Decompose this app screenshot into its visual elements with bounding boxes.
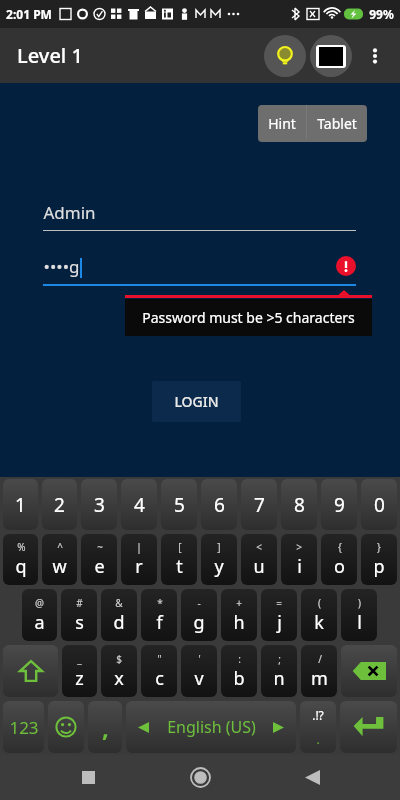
button[interactable]: & xyxy=(101,589,137,641)
staticText: u xyxy=(253,554,265,579)
button[interactable]: * xyxy=(141,589,177,641)
staticText: } xyxy=(377,540,381,554)
staticText: 1 xyxy=(15,492,26,518)
button[interactable]: 4 xyxy=(121,479,157,530)
button[interactable]: Back xyxy=(288,755,336,800)
button[interactable]: # xyxy=(61,589,97,641)
staticText: % xyxy=(17,540,26,554)
button[interactable]: 8 xyxy=(281,479,317,530)
button[interactable]: .!? xyxy=(300,701,336,753)
button[interactable]: _ xyxy=(62,645,97,697)
staticText: ~ xyxy=(97,540,103,554)
button[interactable]: Hint xyxy=(264,35,306,77)
staticText: Level 1 xyxy=(17,42,83,69)
staticText: 2:01 PM xyxy=(6,6,52,22)
staticText: m xyxy=(311,666,328,691)
staticText: e xyxy=(94,554,105,579)
button[interactable]: ; xyxy=(261,645,297,697)
staticText: ) xyxy=(358,596,361,610)
staticText: j xyxy=(277,610,282,635)
button[interactable]: Space xyxy=(126,701,296,753)
button[interactable]: 3 xyxy=(81,479,117,530)
button[interactable]: ' xyxy=(181,645,217,697)
button[interactable]: Backspace xyxy=(341,645,397,697)
staticText: a xyxy=(34,610,45,635)
button[interactable]: ( xyxy=(301,589,337,641)
staticText: 6 xyxy=(214,492,225,518)
staticText: # xyxy=(76,596,83,610)
button[interactable]: 123 xyxy=(3,701,44,753)
button[interactable]: [ xyxy=(161,534,197,585)
staticText: t xyxy=(176,554,183,579)
button[interactable]: " xyxy=(141,645,177,697)
staticText: ••••g xyxy=(43,255,80,278)
staticText: z xyxy=(75,666,84,691)
staticText: ^ xyxy=(57,540,63,554)
button[interactable]: ^ xyxy=(42,534,77,585)
button[interactable]: 6 xyxy=(201,479,237,530)
button[interactable]: ] xyxy=(201,534,237,585)
staticText: 2 xyxy=(54,492,65,518)
staticText: $ xyxy=(116,652,122,666)
staticText: 123 xyxy=(9,716,39,739)
staticText: 7 xyxy=(254,492,265,518)
staticText: w xyxy=(52,554,67,579)
button[interactable]: ••••g xyxy=(43,255,356,286)
staticText: x xyxy=(114,666,124,691)
button[interactable]: Recents xyxy=(64,755,112,800)
staticText: 4 xyxy=(134,492,145,518)
button[interactable]: Home xyxy=(176,755,224,800)
staticText: h xyxy=(233,610,245,635)
button[interactable]: } xyxy=(361,534,397,585)
button[interactable]: 5 xyxy=(161,479,197,530)
staticText: n xyxy=(273,666,285,691)
staticText: l xyxy=(357,610,362,635)
button[interactable]: Tablet xyxy=(307,105,367,142)
staticText: .!? xyxy=(312,707,324,723)
staticText: s xyxy=(75,610,84,635)
button[interactable]: 1 xyxy=(3,479,38,530)
button[interactable]: % xyxy=(3,534,38,585)
staticText: b xyxy=(233,666,245,691)
button[interactable]: { xyxy=(321,534,357,585)
button[interactable]: Shift xyxy=(3,645,58,697)
button[interactable]: $ xyxy=(101,645,137,697)
button[interactable]: Hint xyxy=(258,105,306,142)
staticText: - xyxy=(197,596,201,610)
staticText: ; xyxy=(278,652,281,666)
staticText: . xyxy=(316,731,320,747)
button[interactable]: Admin xyxy=(43,201,356,231)
button[interactable]: ) xyxy=(341,589,377,641)
button[interactable]: More options xyxy=(356,37,394,75)
staticText: g xyxy=(193,610,205,635)
button[interactable]: Emoji xyxy=(48,701,84,753)
staticText: i xyxy=(297,554,302,579)
staticText: : xyxy=(238,652,241,666)
button[interactable]: 7 xyxy=(241,479,277,530)
staticText: p xyxy=(373,554,385,579)
button[interactable]: 2 xyxy=(42,479,77,530)
staticText: f xyxy=(156,610,163,635)
button[interactable]: Enter xyxy=(340,701,397,753)
button[interactable]: @ xyxy=(22,589,57,641)
staticText: Tablet xyxy=(317,114,357,133)
button[interactable]: > xyxy=(281,534,317,585)
button[interactable]: + xyxy=(221,589,257,641)
button[interactable]: 9 xyxy=(321,479,357,530)
button[interactable]: | xyxy=(121,534,157,585)
button[interactable]: : xyxy=(221,645,257,697)
button[interactable]: / xyxy=(301,645,337,697)
staticText: 5 xyxy=(174,492,185,518)
button[interactable]: ~ xyxy=(81,534,117,585)
button[interactable]: , xyxy=(88,701,122,753)
button[interactable]: Tablet xyxy=(310,35,352,77)
staticText: LOGIN xyxy=(174,392,219,411)
button[interactable]: 0 xyxy=(361,479,397,530)
button[interactable]: < xyxy=(241,534,277,585)
staticText: 8 xyxy=(294,492,305,518)
staticText: = xyxy=(276,596,282,610)
button[interactable]: = xyxy=(261,589,297,641)
button[interactable]: LOGIN xyxy=(152,381,241,422)
staticText: Hint xyxy=(268,114,296,133)
button[interactable]: - xyxy=(181,589,217,641)
